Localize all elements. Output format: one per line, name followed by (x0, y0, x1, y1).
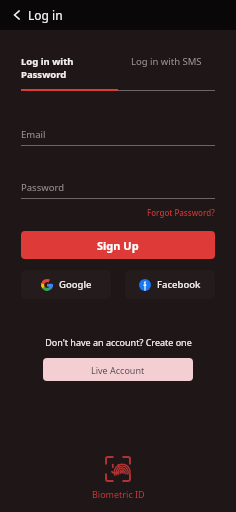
staticText: Password (21, 181, 64, 194)
staticText: Email (21, 128, 46, 141)
staticText: Log in with SMS (131, 55, 202, 68)
button[interactable]: Log in with Password (21, 52, 118, 84)
button[interactable]: Don't have an account? Create one (0, 336, 236, 348)
staticText: Log in (28, 7, 63, 23)
staticText: Sign Up (97, 238, 139, 253)
button[interactable]: Biometric ID (0, 456, 236, 500)
button[interactable]: Forgot Password? (147, 207, 215, 218)
staticText: Google (59, 278, 92, 291)
button[interactable]: Email (21, 128, 215, 146)
staticText: Biometric ID (92, 488, 145, 500)
button[interactable]: Password (21, 181, 215, 199)
button[interactable]: Facebook (125, 270, 215, 299)
staticText: Don't have an account? Create one (45, 336, 192, 348)
button[interactable]: Back (8, 3, 67, 27)
staticText: Log in with Password (21, 55, 118, 81)
button[interactable]: Google (21, 270, 111, 299)
staticText: Forgot Password? (147, 207, 215, 218)
button[interactable]: Live Account (43, 358, 193, 381)
staticText: Live Account (91, 364, 145, 376)
button[interactable]: Log in with SMS (118, 52, 215, 71)
button[interactable]: Sign Up (21, 231, 215, 259)
staticText: Facebook (157, 278, 201, 291)
